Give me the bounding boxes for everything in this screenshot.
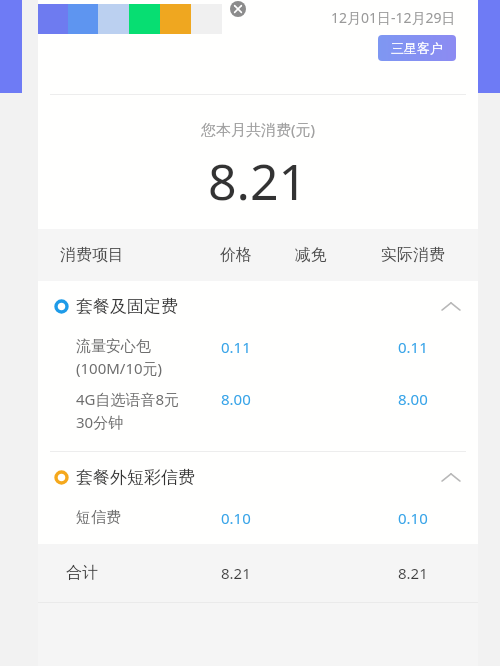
button[interactable]: Promotion banner <box>38 4 222 34</box>
button[interactable]: 4G自选语音8元 30分钟 <box>38 383 478 437</box>
staticText: 您本月共消费(元) <box>201 119 316 139</box>
staticText: 短信费 <box>76 508 121 527</box>
button[interactable]: 套餐外短彩信费 <box>38 452 478 502</box>
staticText: 0.10 <box>221 508 251 528</box>
staticText: 价格 <box>220 245 252 265</box>
button[interactable]: 短信费 <box>38 502 478 532</box>
staticText: 实际消费 <box>381 245 445 265</box>
staticText: 三星客户 <box>391 40 443 56</box>
staticText: 12月01日-12月29日 <box>331 8 456 27</box>
staticText: 8.21 <box>221 563 251 583</box>
button[interactable]: Close ad <box>230 1 246 17</box>
button[interactable]: 流量安心包 (100M/10元) <box>38 331 478 383</box>
staticText: 0.11 <box>221 337 251 357</box>
staticText: 减免 <box>295 245 327 265</box>
staticText: 8.00 <box>398 389 428 409</box>
staticText: 8.21 <box>208 147 308 215</box>
staticText: 消费项目 <box>60 245 124 265</box>
staticText: 合计 <box>66 563 98 583</box>
staticText: 流量安心包 (100M/10元) <box>76 337 163 379</box>
staticText: 4G自选语音8元 30分钟 <box>76 389 180 433</box>
staticText: 套餐及固定费 <box>76 296 178 317</box>
button[interactable]: 三星客户 <box>378 35 456 61</box>
staticText: 0.10 <box>398 508 428 528</box>
staticText: 8.00 <box>221 389 251 409</box>
staticText: 套餐外短彩信费 <box>76 467 195 488</box>
button[interactable]: 套餐及固定费 <box>38 281 478 331</box>
staticText: 8.21 <box>398 563 428 583</box>
staticText: 0.11 <box>398 337 428 357</box>
